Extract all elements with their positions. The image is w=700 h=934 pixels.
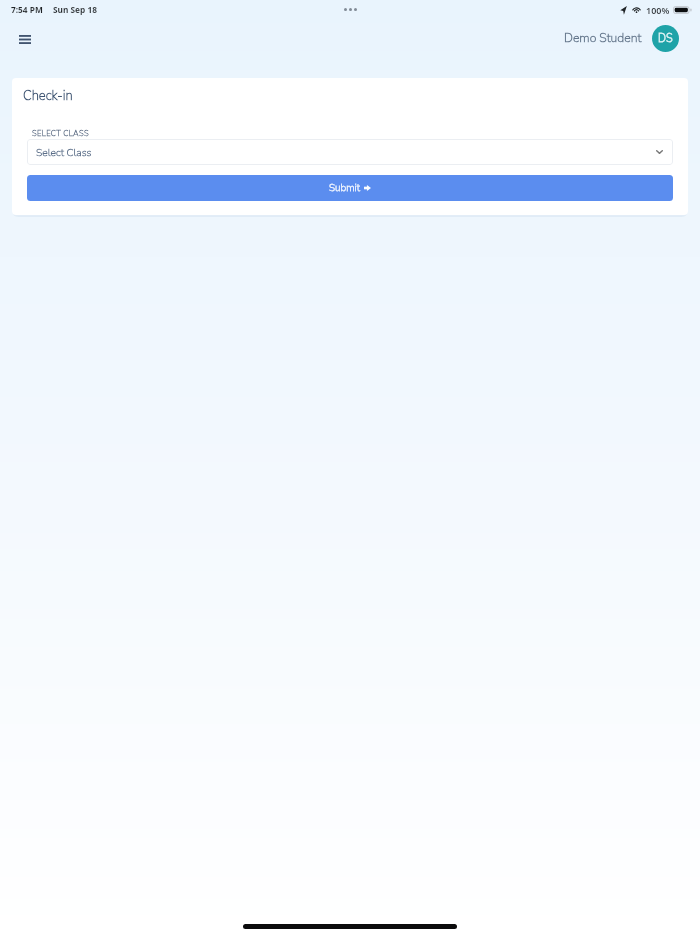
staticText: Submit — [329, 181, 360, 195]
staticText: 100% — [646, 4, 670, 16]
staticText: Sun Sep 18 — [53, 4, 97, 15]
staticText: Check-in — [23, 87, 73, 105]
staticText: SELECT CLASS — [32, 128, 89, 139]
staticText: DS — [658, 31, 673, 46]
staticText: Select Class — [36, 145, 92, 159]
staticText: 7:54 PM — [11, 4, 43, 15]
button[interactable]: Submit — [27, 175, 673, 201]
staticText: Demo Student — [564, 30, 642, 47]
button[interactable]: Open navigation menu — [7, 21, 43, 57]
button[interactable]: Select Class — [27, 139, 673, 165]
button[interactable]: Demo Student — [564, 25, 679, 52]
